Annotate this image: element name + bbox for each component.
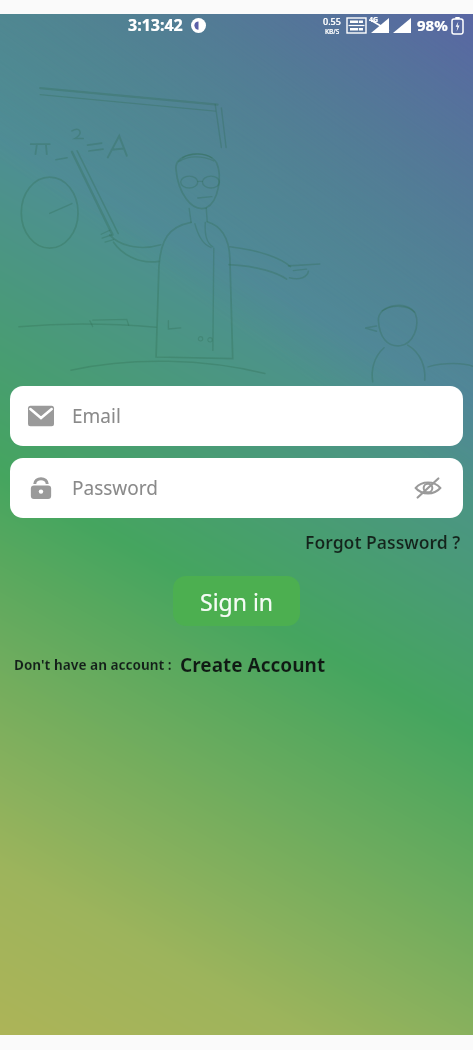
staticText: Forgot Password ? (305, 530, 461, 554)
staticText: Create Account (180, 652, 326, 678)
staticText: Email (72, 403, 121, 429)
button[interactable]: Create Account (172, 650, 326, 680)
button[interactable]: Sign in (173, 576, 300, 626)
staticText: 0.55 (323, 15, 341, 27)
button[interactable]: Toggle password visibility (411, 471, 445, 505)
staticText: KB/S (325, 27, 340, 36)
staticText: 3:13:42 (128, 14, 183, 36)
button[interactable]: Password (10, 458, 463, 518)
staticText: Sign in (200, 586, 274, 617)
staticText: Don't have an account : (14, 656, 172, 674)
staticText: 98% (417, 15, 448, 35)
button[interactable]: Forgot Password ? (293, 526, 473, 558)
other: Email (28, 403, 54, 429)
button[interactable]: Email (10, 386, 463, 446)
staticText: 4G (369, 15, 379, 25)
staticText: Password (72, 475, 158, 501)
other: Password (28, 475, 54, 501)
